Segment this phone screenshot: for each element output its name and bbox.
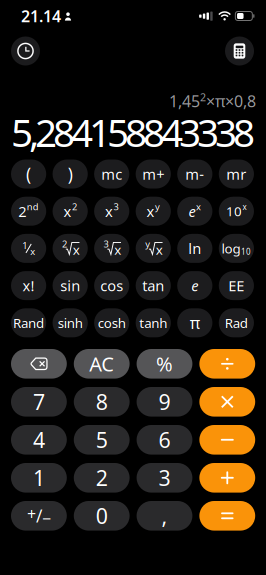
staticText: AC xyxy=(89,350,114,377)
button[interactable]: x xyxy=(94,197,129,226)
button[interactable]: 1 xyxy=(11,463,67,493)
button[interactable]: cosh xyxy=(94,308,129,337)
button[interactable]: 2 xyxy=(11,197,46,226)
button[interactable]: 3 xyxy=(94,234,129,263)
button[interactable]: x xyxy=(53,197,88,226)
staticText: mr xyxy=(226,164,246,184)
staticText: 1 xyxy=(22,239,27,252)
staticText: 10 xyxy=(241,246,251,257)
staticText: 3 xyxy=(158,464,170,492)
staticText: 1 xyxy=(33,464,45,492)
staticText: 8 xyxy=(96,388,108,416)
button[interactable]: cos xyxy=(94,271,129,300)
staticText: x xyxy=(30,245,35,258)
staticText: 3 xyxy=(104,238,109,250)
staticText: tan xyxy=(142,276,164,295)
button[interactable]: tanh xyxy=(136,308,171,337)
staticText: e xyxy=(191,276,198,295)
button[interactable]: 8 xyxy=(74,387,130,417)
staticText: log xyxy=(222,239,241,257)
button[interactable]: 9 xyxy=(137,387,192,417)
staticText: − xyxy=(42,508,51,529)
button[interactable]: 3 xyxy=(137,463,192,493)
button[interactable]: y xyxy=(136,234,171,263)
staticText: 7 xyxy=(33,388,45,416)
button[interactable]: 1 xyxy=(11,234,46,263)
button[interactable]: Rand xyxy=(11,308,46,337)
button[interactable]: sin xyxy=(53,271,88,300)
button[interactable]: mr xyxy=(219,159,254,188)
staticText: x xyxy=(105,201,113,221)
staticText: x! xyxy=(23,276,35,295)
button[interactable]: Rad xyxy=(219,308,254,337)
button[interactable]: log xyxy=(219,234,254,263)
staticText: / xyxy=(36,504,42,527)
staticText: x xyxy=(146,201,154,221)
button[interactable]: mc xyxy=(94,159,129,188)
staticText: sinh xyxy=(58,314,83,332)
button[interactable]: m+ xyxy=(136,159,171,188)
staticText: y xyxy=(155,200,160,213)
button[interactable]: 6 xyxy=(137,425,192,455)
button[interactable]: Switch calculator xyxy=(225,36,254,65)
staticText: ( xyxy=(26,162,31,185)
button[interactable]: AC xyxy=(74,349,130,379)
staticText: 21.14 xyxy=(21,5,61,27)
button[interactable] xyxy=(199,463,255,493)
staticText: 4 xyxy=(33,426,45,454)
staticText: ) xyxy=(68,162,73,185)
staticText: x xyxy=(156,241,163,258)
button[interactable]: e xyxy=(177,197,212,226)
button[interactable] xyxy=(199,387,255,417)
button[interactable]: ln xyxy=(177,234,212,263)
button[interactable]: x xyxy=(136,197,171,226)
button[interactable]: m- xyxy=(177,159,212,188)
button[interactable]: e xyxy=(177,271,212,300)
button[interactable]: sinh xyxy=(53,308,88,337)
button[interactable]: 2 xyxy=(53,234,88,263)
staticText: x xyxy=(63,201,71,221)
button[interactable] xyxy=(199,349,255,379)
button[interactable]: 4 xyxy=(11,425,67,455)
button[interactable]: EE xyxy=(219,271,254,300)
button[interactable]: 2 xyxy=(74,463,130,493)
button[interactable]: 7 xyxy=(11,387,67,417)
staticText: 2 xyxy=(62,238,67,250)
staticText: + xyxy=(27,503,36,524)
staticText: mc xyxy=(101,164,122,184)
button[interactable] xyxy=(199,501,255,531)
staticText: 6 xyxy=(158,426,170,454)
button[interactable]: + xyxy=(11,501,67,531)
button[interactable]: ( xyxy=(11,159,46,188)
staticText: m+ xyxy=(142,164,164,184)
staticText: tanh xyxy=(139,314,167,332)
staticText: e xyxy=(189,201,196,221)
button[interactable]: π xyxy=(177,308,212,337)
button[interactable]: 5 xyxy=(74,425,130,455)
button[interactable]: 0 xyxy=(74,501,130,531)
staticText: Rad xyxy=(225,314,248,332)
staticText: % xyxy=(156,350,173,377)
staticText: EE xyxy=(228,276,244,295)
button[interactable]: x! xyxy=(11,271,46,300)
staticText: 0 xyxy=(96,502,108,530)
staticText: x xyxy=(114,241,121,258)
staticText: cosh xyxy=(98,314,126,332)
button[interactable] xyxy=(11,349,67,379)
button[interactable]: 10 xyxy=(219,197,254,226)
staticText: π xyxy=(190,312,200,333)
button[interactable]: tan xyxy=(136,271,171,300)
button[interactable]: History xyxy=(11,36,40,65)
button[interactable] xyxy=(199,425,255,455)
staticText: x xyxy=(196,200,201,213)
staticText: x xyxy=(243,202,247,212)
button[interactable]: , xyxy=(137,501,192,531)
staticText: 2 xyxy=(200,90,206,104)
staticText: 1,45 xyxy=(169,90,200,112)
button[interactable]: % xyxy=(137,349,192,379)
staticText: m- xyxy=(185,164,204,184)
staticText: sin xyxy=(60,276,80,295)
staticText: , xyxy=(161,502,167,530)
button[interactable]: ) xyxy=(53,159,88,188)
staticText: Rand xyxy=(13,314,44,332)
